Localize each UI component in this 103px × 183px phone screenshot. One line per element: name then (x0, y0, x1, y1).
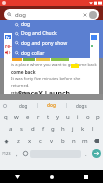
button[interactable]: w (11, 111, 22, 123)
button[interactable]: p (93, 111, 103, 123)
button[interactable]: Shift (0, 135, 13, 147)
button[interactable]: dog (10, 100, 37, 111)
button[interactable]: , (13, 147, 21, 160)
button[interactable]: u (63, 111, 73, 123)
button[interactable]: dog (4, 9, 99, 20)
staticText: v (50, 137, 54, 145)
staticText: h (61, 125, 65, 133)
staticText: t (47, 113, 50, 121)
button[interactable]: i (73, 111, 83, 123)
button[interactable]: z (13, 135, 24, 147)
staticText: u (66, 113, 70, 121)
staticText: z (17, 137, 20, 145)
button[interactable]: q (0, 111, 11, 123)
staticText: d (31, 125, 35, 133)
button[interactable]: Backspace (90, 135, 103, 147)
button[interactable]: dogs (67, 100, 95, 111)
staticText: e (26, 113, 30, 121)
staticText: dog (15, 11, 27, 19)
staticText: p (96, 113, 100, 121)
staticText: return to (11, 90, 28, 95)
button[interactable]: n (68, 135, 79, 147)
staticText: , (16, 150, 18, 158)
button[interactable]: t (43, 111, 53, 123)
button[interactable]: Account (89, 11, 97, 19)
staticText: Dog and Chuck (21, 30, 57, 37)
button[interactable]: s (16, 123, 27, 135)
staticText: returned. (11, 83, 30, 89)
staticText: dog collar (21, 50, 45, 57)
button[interactable]: m (79, 135, 90, 147)
staticText: is a place where you want to go. Come ba… (11, 62, 97, 68)
button[interactable]: dog and pony show (0, 38, 103, 48)
button[interactable]: f (38, 123, 48, 135)
staticText: Fr (6, 35, 10, 39)
button[interactable]: b (57, 135, 68, 147)
button[interactable]: k (78, 123, 88, 135)
staticText: f (42, 125, 45, 133)
staticText: dogs (76, 103, 87, 109)
staticText: dog (19, 103, 28, 109)
staticText: y (56, 113, 60, 121)
button[interactable]: g (48, 123, 58, 135)
button[interactable]: x (24, 135, 35, 147)
button[interactable]: Dog and Chuck (0, 29, 103, 38)
staticText: re- (5, 43, 12, 50)
staticText: dog (21, 21, 31, 28)
staticText: i (77, 113, 79, 121)
button[interactable]: j (68, 123, 78, 135)
staticText: It was forty five minutes before she (11, 76, 81, 82)
button[interactable]: l (88, 123, 98, 135)
staticText: k (81, 125, 85, 133)
staticText: SpaceX Launch (18, 89, 71, 99)
button[interactable]: y (53, 111, 63, 123)
button[interactable]: c (35, 135, 46, 147)
staticText: come back (11, 69, 36, 75)
button[interactable]: r (33, 111, 43, 123)
staticText: j (72, 125, 74, 133)
staticText: ?123 (2, 151, 11, 156)
button[interactable]: v (46, 135, 57, 147)
staticText: n (72, 137, 76, 145)
button[interactable]: e (22, 111, 33, 123)
staticText: q (4, 113, 8, 121)
staticText: r (37, 113, 40, 121)
button[interactable]: h (58, 123, 68, 135)
staticText: o (86, 113, 90, 121)
button[interactable]: d (27, 123, 38, 135)
staticText: g (51, 125, 55, 133)
button[interactable]: Home (35, 170, 69, 183)
button[interactable]: Emoji (21, 147, 29, 160)
button[interactable]: dog collar (0, 48, 103, 58)
button[interactable]: Recents (69, 170, 103, 183)
staticText: s (20, 125, 23, 133)
button[interactable]: . (82, 147, 90, 160)
button[interactable]: dog (0, 20, 103, 29)
staticText: l (92, 125, 94, 133)
staticText: x (28, 137, 32, 145)
button[interactable]: o (83, 111, 93, 123)
staticText: w (14, 113, 19, 121)
button[interactable]: a (5, 123, 16, 135)
button[interactable]: dog (38, 100, 66, 111)
staticText: m (82, 137, 88, 145)
button[interactable]: ?123 (0, 147, 13, 160)
staticText: dog and pony show (21, 40, 68, 47)
button[interactable]: Back (0, 170, 35, 183)
staticText: dog (47, 102, 57, 109)
button[interactable]: Enter (90, 147, 103, 160)
staticText: a (9, 125, 13, 133)
staticText: c (39, 137, 42, 145)
staticText: . (85, 150, 87, 158)
staticText: b (61, 137, 65, 145)
